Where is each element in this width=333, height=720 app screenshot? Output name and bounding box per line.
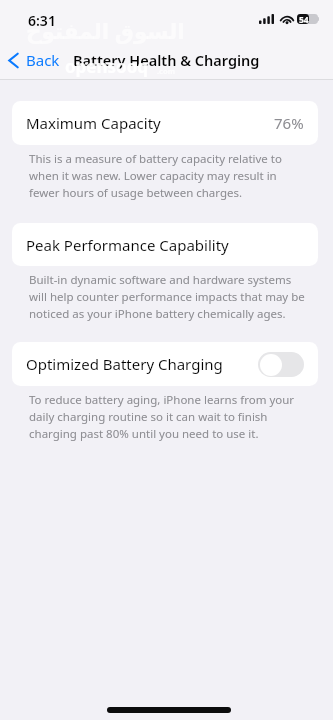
staticText: Peak Performance Capability — [26, 235, 229, 255]
staticText: Back — [26, 50, 60, 70]
staticText: Battery Health & Charging — [73, 50, 260, 70]
button[interactable]: Optimized Battery Charging toggle — [258, 352, 304, 377]
staticText: Optimized Battery Charging — [26, 354, 223, 374]
staticText: 76% — [274, 113, 304, 133]
staticText: 54 — [299, 14, 309, 24]
staticText: Built-in dynamic software and hardware s… — [29, 272, 307, 322]
staticText: 54 — [299, 14, 309, 24]
staticText: opensooq — [65, 55, 149, 78]
staticText: To reduce battery aging, iPhone learns f… — [29, 392, 307, 442]
staticText: 6:31 — [28, 11, 56, 30]
staticText: السوق المفتوح — [26, 16, 185, 45]
staticText: This is a measure of battery capacity re… — [29, 151, 307, 201]
button[interactable]: Back — [8, 50, 60, 70]
staticText: Maximum Capacity — [26, 113, 161, 133]
